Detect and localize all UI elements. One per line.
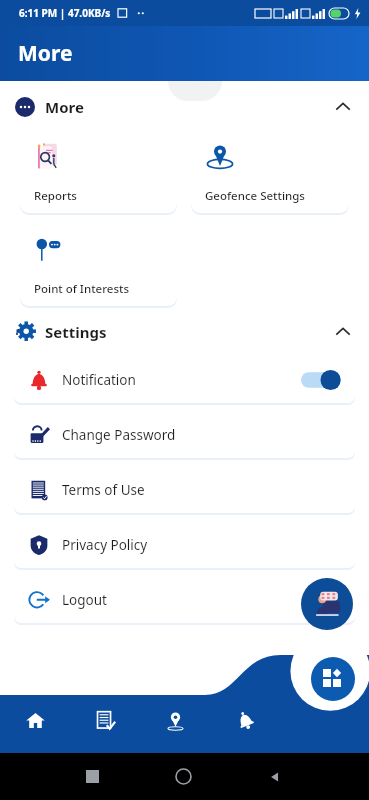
button[interactable]: Alerts bbox=[210, 699, 280, 741]
button[interactable]: Notification bbox=[14, 356, 355, 403]
staticText: Reports bbox=[34, 188, 77, 204]
staticText: More bbox=[45, 97, 84, 117]
staticText: Settings bbox=[45, 322, 107, 342]
button[interactable]: Logout bbox=[14, 576, 355, 623]
button[interactable]: Reports bbox=[20, 131, 177, 213]
button[interactable]: Privacy Policy bbox=[14, 521, 355, 568]
button[interactable]: Geofence Settings bbox=[191, 131, 349, 213]
staticText: Point of Interests bbox=[34, 281, 129, 297]
button[interactable]: Reports bbox=[70, 699, 140, 741]
staticText: More bbox=[18, 39, 73, 68]
button[interactable]: Location bbox=[140, 699, 210, 741]
button[interactable]: Settings bbox=[0, 314, 369, 350]
button[interactable]: Terms of Use bbox=[14, 466, 355, 513]
button[interactable]: Profile bbox=[301, 578, 353, 630]
staticText: 6:11 PM | 47.0KB/s bbox=[19, 6, 111, 20]
staticText: Terms of Use bbox=[62, 481, 145, 499]
staticText: Logout bbox=[62, 591, 107, 609]
button[interactable]: Change Password bbox=[14, 411, 355, 458]
staticText: Notification bbox=[62, 371, 136, 389]
staticText: Change Password bbox=[62, 426, 176, 444]
button[interactable]: More bbox=[0, 89, 369, 125]
staticText: Privacy Policy bbox=[62, 536, 148, 554]
button[interactable]: Home bbox=[0, 699, 70, 741]
button[interactable]: Point of Interests bbox=[20, 224, 177, 306]
staticText: Geofence Settings bbox=[205, 188, 305, 204]
button[interactable]: Apps bbox=[311, 657, 355, 701]
button[interactable]: Notification toggle bbox=[301, 369, 341, 391]
